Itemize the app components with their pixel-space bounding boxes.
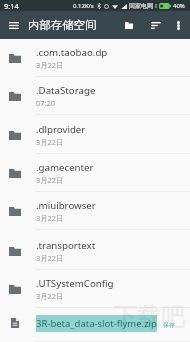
button[interactable]: More options [167,11,189,39]
staticText: 9:14 [4,1,19,11]
staticText: 3月22日 [36,137,64,147]
staticText: 3月22日 [36,253,64,263]
staticText: 0.12K/s [73,2,94,10]
staticText: .gamecenter [36,161,94,174]
staticText: 下载吧 [113,302,185,332]
button[interactable]: .dlprovider [0,116,190,154]
staticText: 保存 [163,321,175,329]
button[interactable]: .gamecenter [0,154,190,192]
staticText: 内部存储空间 [28,18,97,32]
staticText: 3R-beta_data-slot-flyme.zip [36,317,157,330]
staticText: .DataStorage [36,84,96,97]
staticText: .com.taobao.dp [36,46,108,59]
staticText: 回家电网 [129,2,153,10]
button[interactable]: .UTSystemConfig [0,270,190,308]
button[interactable]: .com.taobao.dp [0,39,190,77]
staticText: .transportext [36,239,96,252]
button[interactable]: .DataStorage [0,77,190,115]
staticText: 3月22日 [36,175,64,185]
staticText: .UTSystemConfig [36,277,114,290]
button[interactable]: New folder [121,11,144,39]
button[interactable]: .transportext [0,232,190,270]
button[interactable]: Sort [144,11,167,39]
button[interactable]: Menu [0,11,28,39]
staticText: .dlprovider [36,123,86,136]
staticText: 3月22日 [36,60,64,70]
staticText: .miuibrowser [36,199,96,212]
staticText: 3月22日 [36,213,64,223]
staticText: 3月22日 [36,291,64,301]
button[interactable]: .miuibrowser [0,192,190,230]
staticText: 07:20 [36,98,55,108]
button[interactable]: 3R-beta_data-slot-flyme.zip [0,304,190,342]
staticText: 40% [173,2,185,10]
